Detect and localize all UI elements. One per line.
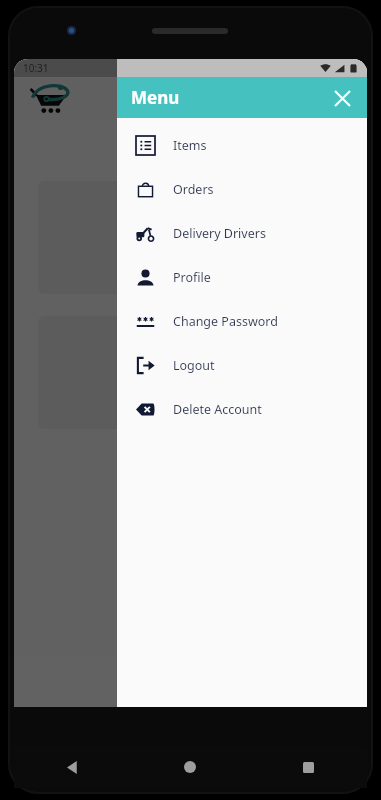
button[interactable]: Close menu: [327, 83, 357, 113]
button[interactable]: Delete Account: [117, 387, 367, 431]
button[interactable]: Orders: [38, 316, 343, 429]
staticText: Change Password: [173, 313, 278, 330]
staticText: Delete Account: [173, 401, 262, 418]
staticText: Profile: [173, 269, 211, 286]
button[interactable]: Recents: [293, 752, 323, 782]
staticText: Orders: [173, 181, 214, 198]
staticText: Menu: [131, 86, 180, 109]
staticText: Logout: [173, 357, 215, 374]
staticText: 3: [186, 260, 195, 280]
staticText: Orders: [166, 372, 215, 392]
button[interactable]: Change Password: [117, 299, 367, 343]
button[interactable]: Items: [117, 123, 367, 167]
staticText: 10:31: [23, 61, 49, 75]
button[interactable]: Home: [175, 752, 205, 782]
staticText: Items: [173, 137, 207, 154]
button[interactable]: Logout: [117, 343, 367, 387]
staticText: Delivery Drivers: [173, 225, 266, 242]
button[interactable]: Profile: [117, 255, 367, 299]
button[interactable]: Delivery Drivers: [117, 211, 367, 255]
button[interactable]: Orders: [117, 167, 367, 211]
staticText: 5: [186, 395, 195, 415]
button[interactable]: Back: [58, 752, 88, 782]
button[interactable]: Orders: [38, 181, 343, 294]
staticText: Orders: [166, 237, 215, 257]
